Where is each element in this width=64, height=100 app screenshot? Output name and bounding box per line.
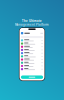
button[interactable] xyxy=(21,45,43,48)
button[interactable] xyxy=(21,48,43,51)
button[interactable] xyxy=(21,68,43,71)
button[interactable]: More xyxy=(40,33,43,34)
button[interactable] xyxy=(21,61,43,64)
button[interactable] xyxy=(21,52,43,55)
staticText: Management Platform xyxy=(15,23,49,26)
button[interactable] xyxy=(21,55,43,58)
button[interactable] xyxy=(21,58,43,61)
button[interactable] xyxy=(21,39,43,42)
button[interactable] xyxy=(19,75,44,79)
button[interactable] xyxy=(21,64,43,67)
staticText: The Ultimate xyxy=(22,19,42,23)
button[interactable] xyxy=(21,42,43,45)
